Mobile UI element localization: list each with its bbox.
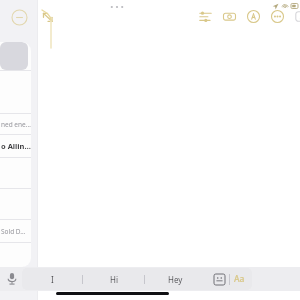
button[interactable]: Sold D… <box>0 219 31 242</box>
button[interactable]: Multitasking options <box>104 3 130 11</box>
staticText: Sold D… <box>1 227 26 236</box>
button[interactable] <box>0 42 28 70</box>
button[interactable]: Camera <box>222 9 237 24</box>
button[interactable]: Formatting <box>198 9 213 24</box>
staticText: ned ene… <box>1 120 31 129</box>
staticText: o Allin… <box>1 141 31 151</box>
button[interactable]: Markup <box>246 9 261 24</box>
staticText: I <box>51 274 54 285</box>
button[interactable] <box>0 242 31 267</box>
button[interactable]: I <box>22 268 82 290</box>
staticText: Hi <box>110 274 118 285</box>
button[interactable]: ned ene… <box>0 113 31 134</box>
button[interactable]: Hi <box>83 268 144 290</box>
button[interactable]: Dictate <box>4 270 20 286</box>
button[interactable] <box>0 70 31 113</box>
button[interactable]: Menu <box>11 9 28 26</box>
staticText: Hey <box>168 274 183 285</box>
button[interactable]: Hey <box>145 268 206 290</box>
button[interactable]: o Allin… <box>0 134 31 157</box>
staticText: Aa <box>234 273 245 285</box>
button[interactable]: Text formatting <box>234 273 245 285</box>
button[interactable]: Expand note <box>39 8 57 26</box>
button[interactable] <box>0 188 31 219</box>
button[interactable] <box>0 157 31 188</box>
button[interactable]: Emoji keyboard <box>214 274 225 285</box>
button[interactable]: Compose <box>294 9 300 24</box>
button[interactable]: More options <box>270 9 285 24</box>
